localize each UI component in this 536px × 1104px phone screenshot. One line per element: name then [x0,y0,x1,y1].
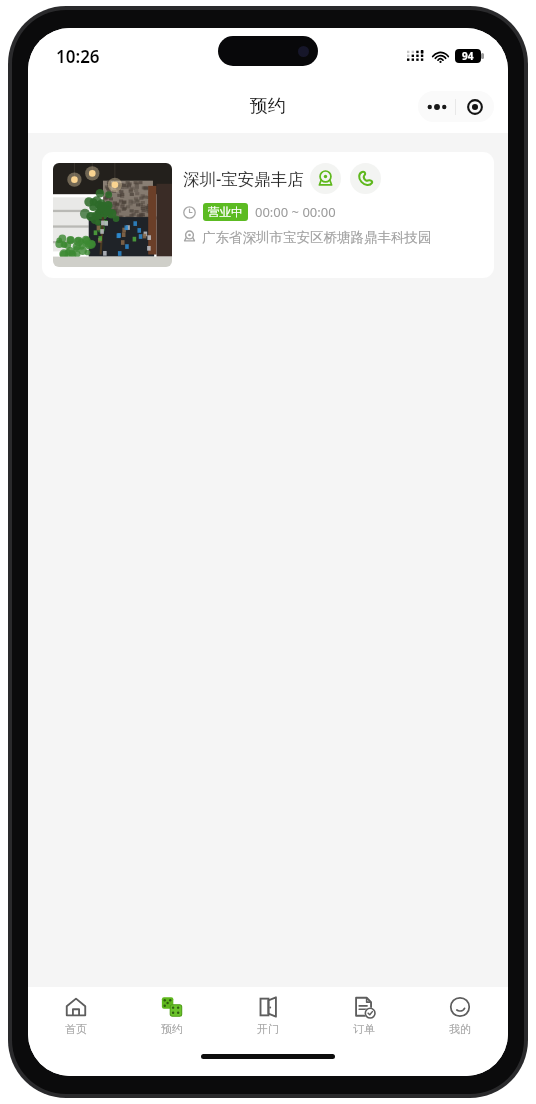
button[interactable]: 预约 [124,987,220,1044]
staticText: 首页 [65,1022,87,1036]
button[interactable]: Close [456,91,494,122]
staticText: 预约 [250,95,286,118]
staticText: 94 [462,49,474,63]
staticText: 营业中 [208,205,243,219]
button[interactable]: More [418,91,455,122]
staticText: 订单 [353,1022,375,1036]
staticText: 深圳-宝安鼎丰店 [183,167,304,190]
button[interactable]: 首页 [28,987,124,1044]
staticText: 预约 [161,1022,183,1036]
staticText: 00:00 ~ 00:00 [255,203,336,221]
button[interactable]: 订单 [316,987,412,1044]
staticText: 我的 [449,1022,471,1036]
staticText: 开门 [257,1022,279,1036]
button[interactable]: Navigate [310,163,341,194]
staticText: 10:26 [56,45,100,68]
staticText: 广东省深圳市宝安区桥塘路鼎丰科技园 [202,229,432,246]
button[interactable]: 我的 [412,987,508,1044]
button[interactable]: 深圳-宝安鼎丰店 [42,152,494,278]
button[interactable]: Call [350,163,381,194]
button[interactable]: 开门 [220,987,316,1044]
